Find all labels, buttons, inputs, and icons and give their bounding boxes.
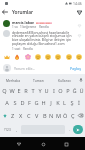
- button[interactable]: Ü: [78, 85, 85, 97]
- staticText: W: [9, 87, 15, 95]
- staticText: 14:46: [73, 1, 82, 6]
- button[interactable]: I: [50, 85, 57, 97]
- staticText: E: [17, 87, 21, 95]
- button[interactable]: Recents: [61, 139, 71, 149]
- button[interactable]: Kullanıcı: [51, 74, 77, 85]
- staticText: G: [34, 99, 39, 107]
- button[interactable]: Q: [0, 85, 8, 97]
- button[interactable]: H: [40, 97, 47, 109]
- staticText: K: [56, 99, 60, 107]
- staticText: R: [24, 87, 28, 95]
- button[interactable]: S: [11, 97, 19, 109]
- button[interactable]: Emoji: [53, 52, 62, 61]
- staticText: 1 beğenme: [20, 25, 37, 29]
- button[interactable]: A: [3, 97, 11, 109]
- button[interactable]: B: [41, 109, 48, 122]
- button[interactable]: Merhaba: [0, 74, 25, 85]
- button[interactable]: Back: [14, 139, 24, 149]
- button[interactable]: Send: [73, 125, 83, 134]
- staticText: dedeman68 Bonushost hazırlanabilir, elin…: [12, 30, 76, 46]
- staticText: U: [44, 87, 49, 95]
- button[interactable]: Emoji: [2, 52, 11, 61]
- staticText: O: [58, 87, 63, 95]
- staticText: .: [69, 127, 71, 132]
- button[interactable]: K: [54, 97, 61, 109]
- button[interactable]: X: [17, 109, 25, 122]
- button[interactable]: Home: [38, 139, 48, 149]
- button[interactable]: G: [33, 97, 40, 109]
- button[interactable]: O: [57, 85, 64, 97]
- button[interactable]: İ: [75, 97, 82, 109]
- button[interactable]: Ç: [69, 109, 76, 122]
- staticText: Tuman: [33, 78, 44, 82]
- staticText: Ç: [71, 112, 75, 120]
- button[interactable]: J: [47, 97, 54, 109]
- staticText: X: [19, 112, 23, 120]
- staticText: Q: [2, 87, 7, 95]
- button[interactable]: Voice input: [77, 74, 85, 85]
- staticText: T: [31, 87, 35, 95]
- button[interactable]: Like: [76, 22, 82, 28]
- button[interactable]: ?123: [2, 125, 13, 134]
- button[interactable]: L: [61, 97, 68, 109]
- button[interactable]: Emoji: [43, 52, 52, 61]
- button[interactable]: Z: [9, 109, 17, 122]
- button[interactable]: F: [26, 97, 33, 109]
- staticText: S: [13, 99, 17, 107]
- staticText: Kullanıcı: [58, 78, 71, 82]
- staticText: A: [5, 99, 9, 107]
- staticText: Yanıtla: [23, 47, 33, 51]
- button[interactable]: N: [48, 109, 55, 122]
- button[interactable]: Ş: [68, 97, 75, 109]
- button[interactable]: Emoji: [23, 52, 32, 61]
- button[interactable]: Tuman: [25, 74, 51, 85]
- button[interactable]: C: [25, 109, 33, 122]
- button[interactable]: Like: [76, 32, 82, 38]
- button[interactable]: Emoji: [12, 52, 21, 61]
- button[interactable]: Backspace: [76, 109, 85, 122]
- staticText: Yorum ekle...: [14, 66, 69, 71]
- staticText: Y: [38, 87, 42, 95]
- staticText: J: [50, 99, 52, 107]
- staticText: F: [28, 99, 31, 107]
- button[interactable]: P: [64, 85, 71, 97]
- button[interactable]: T: [29, 85, 36, 97]
- button[interactable]: Ğ: [71, 85, 78, 97]
- button[interactable]: Comma: [13, 125, 20, 134]
- button[interactable]: R: [22, 85, 29, 97]
- staticText: Yorumlar: [12, 9, 34, 15]
- staticText: M: [56, 112, 62, 120]
- staticText: L: [63, 99, 66, 107]
- button[interactable]: Back: [0, 7, 10, 17]
- staticText: ?123: [4, 128, 11, 132]
- button[interactable]: M: [55, 109, 62, 122]
- staticText: I: [53, 87, 55, 95]
- staticText: ,: [16, 127, 18, 132]
- button[interactable]: W: [8, 85, 15, 97]
- staticText: P: [66, 87, 70, 95]
- staticText: B: [43, 112, 47, 120]
- button[interactable]: Paylaş: [69, 64, 82, 73]
- button[interactable]: V: [33, 109, 41, 122]
- button[interactable]: Y: [36, 85, 43, 97]
- button[interactable]: Emoji: [33, 52, 42, 61]
- staticText: Paylaş: [70, 66, 81, 71]
- button[interactable]: Shift: [0, 109, 9, 122]
- button[interactable]: D: [19, 97, 26, 109]
- button[interactable]: E: [15, 85, 22, 97]
- staticText: Z: [11, 112, 15, 120]
- staticText: C: [27, 112, 31, 120]
- staticText: Ü: [79, 87, 84, 95]
- staticText: İ: [78, 99, 80, 107]
- button[interactable]: U: [43, 85, 50, 97]
- staticText: Ş: [70, 99, 74, 107]
- button[interactable]: Emoji: [74, 52, 83, 61]
- button[interactable]: Ö: [62, 109, 69, 122]
- button[interactable]: Emoji: [64, 52, 73, 61]
- staticText: marcis.labae: [12, 20, 35, 25]
- button[interactable]: Share: [75, 7, 84, 17]
- staticText: Yanıtla: [39, 25, 49, 29]
- staticText: 1 sa: [12, 25, 18, 29]
